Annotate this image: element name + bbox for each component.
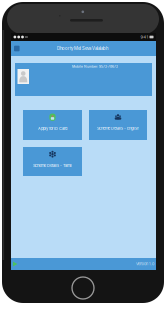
button[interactable]: Apply for ID Card bbox=[23, 110, 82, 140]
staticText: Scheme Details - Tamil bbox=[33, 163, 72, 168]
staticText: Apply for ID Card bbox=[38, 126, 67, 131]
staticText: Mobile Number: 9572-78672 bbox=[72, 64, 118, 68]
button[interactable]: Scheme Details - Tamil bbox=[23, 147, 82, 176]
staticText: Dhoorty Mel Seva Valalabh bbox=[57, 46, 108, 51]
staticText: 9:41 bbox=[140, 35, 148, 39]
button[interactable]: Scheme Details - English bbox=[89, 110, 147, 140]
staticText: Scheme Details - English bbox=[97, 126, 139, 131]
staticText: Version 1.0 bbox=[136, 262, 154, 266]
